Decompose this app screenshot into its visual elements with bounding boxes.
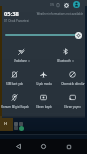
button[interactable]: Otomatik döndür (58, 67, 87, 90)
button[interactable]: User account (73, 1, 80, 8)
button[interactable]: Home (37, 140, 50, 153)
button[interactable]: Ekran yayını (58, 90, 87, 113)
staticText: 0% (50, 3, 55, 7)
button[interactable]: Bluetooth (43, 44, 87, 67)
button[interactable]: Brightness (5, 29, 82, 41)
staticText: Ekran yayını (64, 105, 81, 109)
button[interactable]: Vodafone (0, 44, 43, 67)
staticText: Bluetooth (57, 59, 71, 63)
button[interactable]: Recent apps (62, 140, 75, 153)
staticText: Konum Bilgisi Kapalı (1, 105, 29, 109)
button[interactable]: Ekran kaydı (29, 90, 58, 113)
button[interactable]: Settings (63, 2, 69, 8)
button[interactable]: Konum Bilgisi Kapalı (0, 90, 29, 113)
staticText: Uçak modu (36, 82, 52, 86)
staticText: H (4, 121, 8, 127)
staticText: 01 Ocak Pazartesi (4, 19, 29, 23)
staticText: 05:38 (4, 10, 19, 18)
button[interactable]: Back (12, 140, 25, 153)
staticText: Ekran kaydı (36, 105, 52, 109)
staticText: Otomatik döndür (61, 82, 85, 86)
staticText: Weather informations not available (36, 12, 83, 16)
button[interactable]: SIM kart yok (0, 67, 29, 90)
staticText: Vodafone (14, 59, 27, 63)
button[interactable]: Uçak modu (29, 67, 58, 90)
staticText: SIM kart yok (6, 82, 23, 86)
